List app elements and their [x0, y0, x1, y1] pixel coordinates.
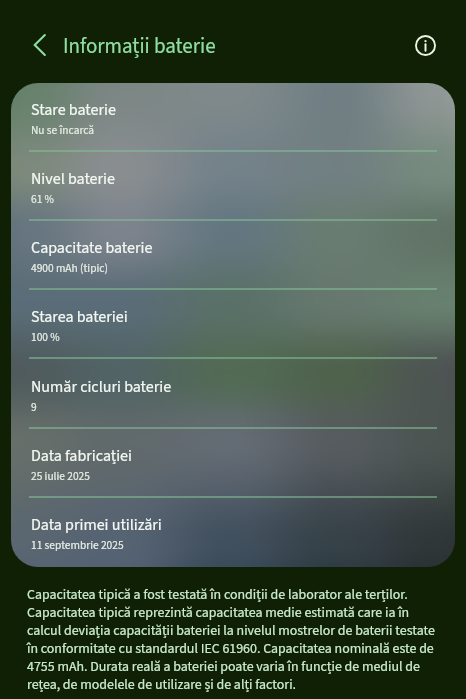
staticText: Data primei utilizări: [31, 514, 162, 537]
staticText: Nu se încarcă: [31, 122, 95, 138]
button[interactable]: Data fabricației: [11, 429, 455, 498]
button[interactable]: Stare baterie: [11, 83, 455, 152]
button[interactable]: Număr cicluri baterie: [11, 360, 455, 429]
staticText: Data fabricației: [31, 445, 132, 468]
staticText: Informații baterie: [63, 31, 216, 61]
staticText: Nivel baterie: [31, 168, 115, 191]
staticText: 25 iulie 2025: [31, 468, 90, 484]
button[interactable]: Starea bateriei: [11, 290, 455, 359]
staticText: Număr cicluri baterie: [31, 376, 172, 399]
staticText: 100 %: [31, 329, 60, 345]
staticText: 11 septembrie 2025: [31, 537, 124, 553]
button[interactable]: Back: [23, 28, 57, 62]
staticText: 61 %: [31, 191, 54, 207]
staticText: Stare baterie: [31, 99, 116, 122]
staticText: Capacitate baterie: [31, 237, 153, 260]
button[interactable]: Information: [408, 28, 442, 62]
staticText: 4900 mAh (tipic): [31, 260, 108, 276]
button[interactable]: Capacitate baterie: [11, 221, 455, 290]
staticText: 9: [31, 399, 37, 415]
button[interactable]: Nivel baterie: [11, 152, 455, 221]
staticText: Capacitatea tipică a fost testată în con…: [27, 585, 444, 695]
button[interactable]: Data primei utilizări: [11, 498, 455, 567]
staticText: Starea bateriei: [31, 306, 128, 329]
